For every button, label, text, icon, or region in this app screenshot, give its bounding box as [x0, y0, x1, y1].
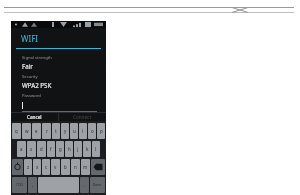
staticText: o	[91, 128, 94, 134]
staticText: v	[54, 164, 57, 170]
staticText: Done	[93, 183, 102, 187]
staticText: k	[86, 146, 89, 152]
staticText: e	[35, 128, 38, 134]
button[interactable]: v	[51, 159, 60, 175]
button[interactable]: r	[42, 123, 51, 139]
button[interactable]: w	[22, 123, 31, 139]
button[interactable]: x	[33, 159, 41, 175]
staticText: c	[45, 164, 48, 170]
staticText: p	[100, 128, 103, 134]
staticText: t	[55, 128, 57, 134]
button[interactable]: Backspace	[91, 159, 105, 175]
button[interactable]: ,	[28, 177, 37, 193]
button[interactable]: u	[70, 123, 78, 139]
button[interactable]: Done	[90, 177, 105, 193]
staticText: Signal strength	[22, 55, 52, 61]
staticText: n	[74, 164, 77, 170]
button[interactable]: z	[24, 159, 32, 175]
staticText: ?123	[16, 183, 23, 187]
staticText: WIFI	[21, 33, 39, 44]
button[interactable]: l	[92, 141, 100, 157]
staticText: Cancel	[27, 114, 42, 120]
button[interactable]: y	[61, 123, 69, 139]
button[interactable]: q	[12, 123, 21, 139]
staticText: h	[68, 146, 71, 152]
button[interactable]: j	[74, 141, 82, 157]
staticText: WPA2 PSK	[22, 81, 52, 89]
button[interactable]: Connect	[59, 113, 106, 121]
staticText: g	[59, 146, 62, 152]
button[interactable]: d	[37, 141, 46, 157]
button[interactable]: p	[97, 123, 105, 139]
staticText: m	[83, 164, 88, 170]
button[interactable]: t	[52, 123, 60, 139]
staticText: q	[15, 128, 18, 134]
button[interactable]: a	[17, 141, 26, 157]
staticText: .	[84, 182, 86, 188]
button[interactable]: h	[65, 141, 73, 157]
staticText: b	[64, 164, 67, 170]
button[interactable]: e	[32, 123, 41, 139]
button[interactable]: o	[88, 123, 96, 139]
staticText: r	[46, 128, 48, 134]
staticText: a	[20, 146, 23, 152]
staticText: u	[73, 128, 76, 134]
staticText: Fair	[22, 62, 33, 70]
staticText: Security	[22, 74, 38, 80]
staticText: i	[82, 128, 84, 134]
button[interactable]: b	[61, 159, 70, 175]
staticText: s	[30, 146, 33, 152]
staticText: j	[77, 146, 79, 152]
staticText: ,	[32, 182, 34, 188]
button[interactable]: g	[56, 141, 64, 157]
staticText: d	[40, 146, 43, 152]
button[interactable]: ?123	[12, 177, 27, 193]
button[interactable]: Shift	[12, 159, 23, 175]
staticText: z	[27, 164, 30, 170]
staticText: w	[25, 128, 29, 134]
button[interactable]: c	[42, 159, 50, 175]
button[interactable]: m	[81, 159, 90, 175]
staticText: Password	[22, 93, 41, 99]
staticText: l	[95, 146, 97, 152]
button[interactable]: i	[79, 123, 87, 139]
button[interactable]: f	[47, 141, 55, 157]
button[interactable]: .	[80, 177, 89, 193]
button[interactable]: Cancel	[11, 113, 58, 121]
button[interactable]: s	[27, 141, 36, 157]
staticText: Connect	[73, 114, 92, 120]
staticText: y	[64, 128, 67, 134]
staticText: f	[50, 146, 52, 152]
button[interactable]: n	[71, 159, 80, 175]
staticText: x	[36, 164, 39, 170]
button[interactable]: k	[83, 141, 91, 157]
button[interactable]	[22, 102, 97, 112]
